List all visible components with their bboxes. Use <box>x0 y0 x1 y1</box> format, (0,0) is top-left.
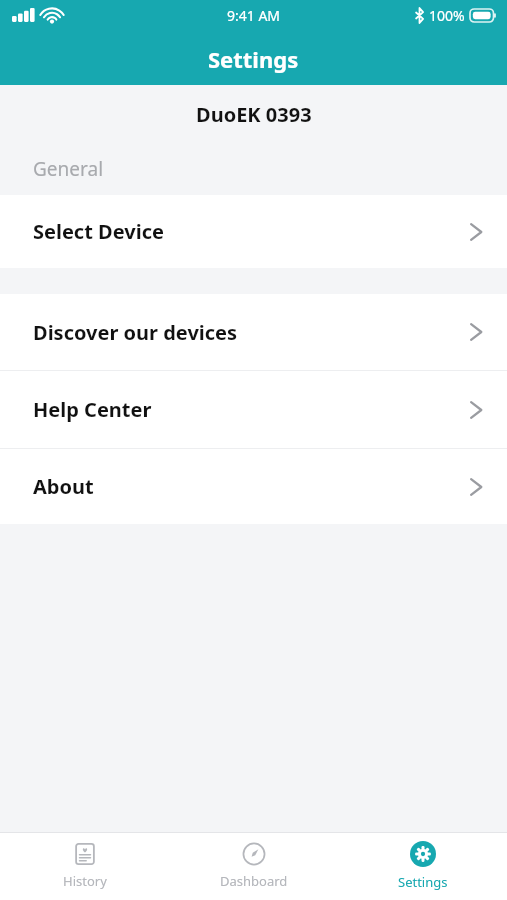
button[interactable]: History <box>0 832 169 900</box>
button[interactable]: About <box>0 449 507 524</box>
staticText: Discover our devices <box>33 319 469 346</box>
staticText: Dashboard <box>220 872 288 890</box>
staticText: History <box>63 872 107 890</box>
button[interactable]: Settings <box>338 832 507 900</box>
staticText: 100% <box>429 6 465 25</box>
staticText: Help Center <box>33 396 469 423</box>
button[interactable]: Discover our devices <box>0 294 507 370</box>
staticText: Settings <box>398 873 448 891</box>
staticText: Settings <box>208 44 299 74</box>
staticText: Select Device <box>33 218 469 245</box>
other: Dashboard <box>242 842 266 866</box>
other: Settings <box>410 841 436 867</box>
staticText: About <box>33 473 469 500</box>
button[interactable]: Dashboard <box>169 832 338 900</box>
staticText: General <box>33 156 104 182</box>
button[interactable]: Help Center <box>0 371 507 448</box>
staticText: 9:41 AM <box>227 6 281 25</box>
button[interactable]: Select Device <box>0 195 507 268</box>
staticText: DuoEK 0393 <box>196 101 312 128</box>
other: History <box>73 842 97 866</box>
